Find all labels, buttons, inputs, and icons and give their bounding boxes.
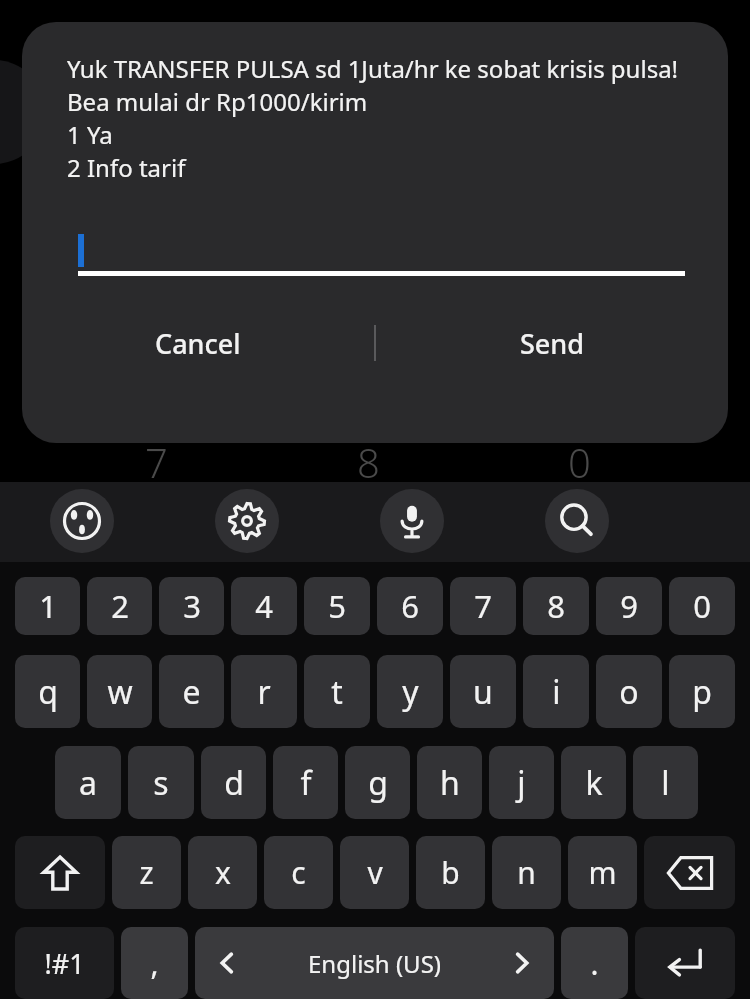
button[interactable]: Shift (15, 836, 105, 909)
button[interactable]: g (345, 746, 410, 819)
button[interactable]: m (568, 836, 637, 909)
button[interactable]: 9 (596, 577, 662, 635)
staticText: 1 (39, 585, 57, 627)
staticText: 6 (401, 585, 419, 627)
button[interactable]: x (188, 836, 257, 909)
button[interactable]: English (US) (195, 927, 554, 999)
staticText: a (79, 761, 97, 805)
staticText: Send (520, 325, 585, 362)
staticText: r (257, 670, 271, 714)
staticText: Yuk TRANSFER PULSA sd 1Juta/hr ke sobat … (67, 52, 679, 85)
staticText: English (US) (308, 947, 442, 980)
button[interactable]: 8 (523, 577, 589, 635)
staticText: 8 (357, 435, 380, 489)
staticText: v (367, 852, 383, 893)
staticText: n (517, 852, 536, 893)
button[interactable]: s (128, 746, 194, 819)
staticText: e (182, 670, 201, 714)
button[interactable]: b (416, 836, 485, 909)
staticText: , (150, 943, 159, 984)
staticText: 2 (111, 585, 129, 627)
staticText: Bea mulai dr Rp1000/kirim (67, 85, 368, 118)
staticText: . (590, 943, 599, 984)
button[interactable]: 0 (669, 577, 735, 635)
staticText: o (619, 670, 639, 714)
button[interactable]: , (121, 927, 188, 999)
staticText: Cancel (155, 325, 241, 362)
button[interactable]: z (112, 836, 181, 909)
button[interactable]: t (304, 655, 370, 728)
button[interactable] (78, 232, 685, 282)
staticText: m (588, 852, 617, 893)
button[interactable]: Send (376, 314, 728, 372)
staticText: l (661, 761, 670, 805)
button[interactable]: !#1 (15, 927, 114, 999)
staticText: 0 (568, 435, 591, 489)
staticText: 3 (183, 585, 201, 627)
button[interactable]: w (87, 655, 152, 728)
staticText: i (552, 670, 561, 714)
staticText: y (402, 670, 419, 714)
button[interactable]: d (201, 746, 266, 819)
button[interactable]: o (596, 655, 662, 728)
staticText: h (440, 761, 460, 805)
button[interactable]: v (340, 836, 409, 909)
button[interactable]: Settings (215, 489, 279, 553)
button[interactable]: n (492, 836, 561, 909)
staticText: z (139, 852, 154, 893)
staticText: 1 Ya (67, 118, 113, 151)
button[interactable]: 1 (15, 577, 80, 635)
button[interactable]: 7 (450, 577, 516, 635)
staticText: b (441, 852, 460, 893)
staticText: f (300, 761, 312, 805)
staticText: 7 (474, 585, 492, 627)
staticText: 0 (693, 585, 711, 627)
button[interactable]: Cancel (22, 314, 374, 372)
button[interactable]: j (489, 746, 554, 819)
staticText: 2 Info tarif (67, 151, 186, 184)
staticText: !#1 (44, 945, 85, 982)
staticText: k (585, 761, 603, 805)
staticText: u (473, 670, 493, 714)
staticText: g (368, 761, 388, 805)
button[interactable]: k (561, 746, 626, 819)
staticText: j (517, 761, 526, 805)
staticText: 4 (255, 585, 273, 627)
staticText: 9 (620, 585, 638, 627)
button[interactable]: Search (545, 489, 609, 553)
button[interactable]: r (231, 655, 297, 728)
staticText: c (291, 852, 306, 893)
button[interactable]: p (669, 655, 735, 728)
button[interactable]: a (55, 746, 121, 819)
button[interactable]: c (264, 836, 333, 909)
button[interactable]: y (377, 655, 443, 728)
button[interactable]: . (561, 927, 628, 999)
button[interactable]: 4 (231, 577, 297, 635)
button[interactable]: Backspace (644, 836, 735, 909)
button[interactable]: 6 (377, 577, 443, 635)
button[interactable]: f (273, 746, 338, 819)
button[interactable]: e (159, 655, 224, 728)
button[interactable]: h (417, 746, 482, 819)
button[interactable]: 3 (159, 577, 224, 635)
staticText: s (153, 761, 169, 805)
button[interactable]: l (633, 746, 698, 819)
staticText: p (692, 670, 712, 714)
button[interactable]: q (15, 655, 80, 728)
staticText: 5 (328, 585, 346, 627)
button[interactable]: Voice input (380, 489, 444, 553)
button[interactable]: i (523, 655, 589, 728)
staticText: x (215, 852, 231, 893)
button[interactable]: Emoji (50, 489, 114, 553)
staticText: d (224, 761, 244, 805)
staticText: q (38, 670, 58, 714)
staticText: w (107, 670, 133, 714)
button[interactable]: 5 (304, 577, 370, 635)
button[interactable]: 2 (87, 577, 152, 635)
button[interactable]: Enter (635, 927, 735, 999)
button[interactable]: u (450, 655, 516, 728)
staticText: 7 (145, 435, 168, 489)
staticText: 8 (547, 585, 565, 627)
staticText: t (331, 670, 343, 714)
